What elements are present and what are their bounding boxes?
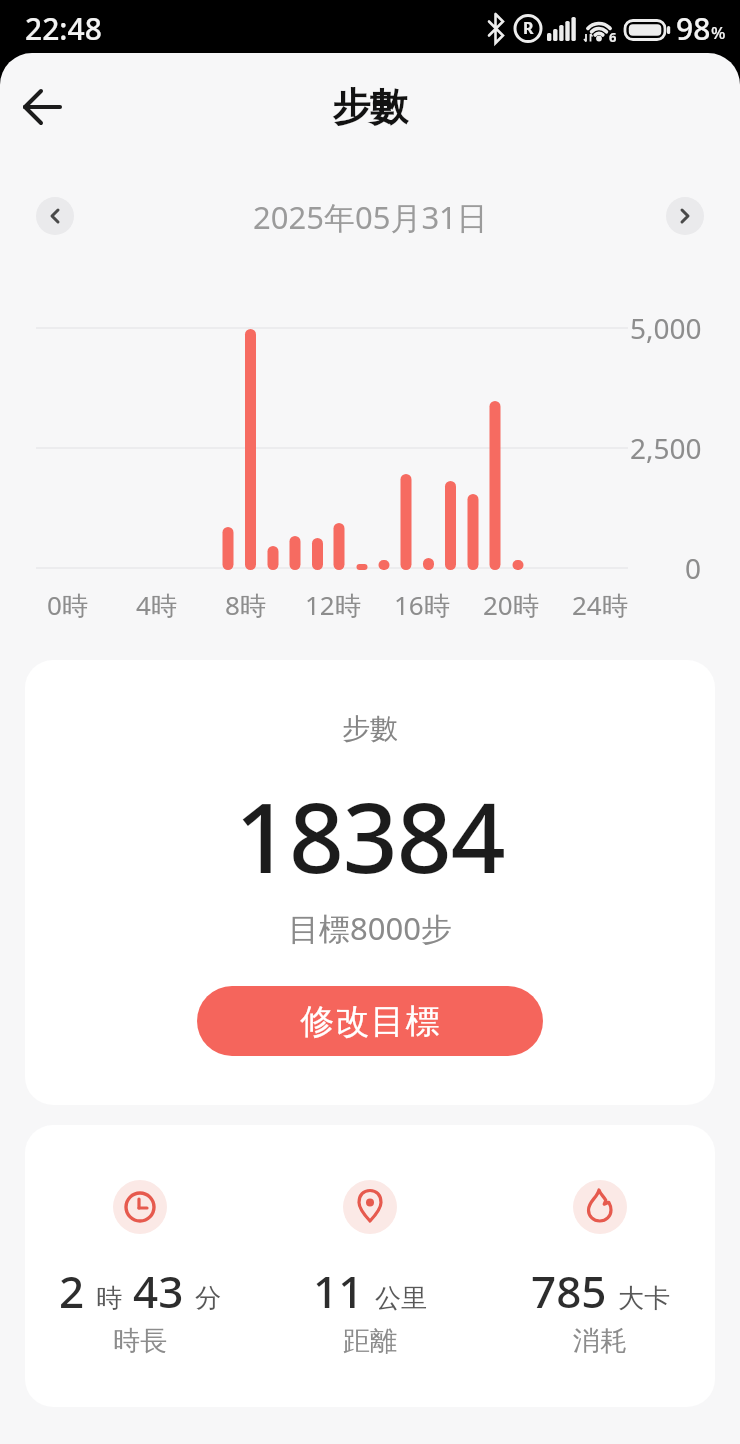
staticText: 2,500	[630, 429, 702, 467]
staticText: 目標8000步	[288, 907, 452, 949]
staticText: 分	[195, 1282, 221, 1315]
staticText: 步數	[342, 711, 398, 746]
staticText: 18384	[235, 770, 505, 901]
staticText: 2025年05月31日	[253, 196, 488, 236]
staticText: 11	[313, 1261, 364, 1321]
staticText: 6	[609, 28, 617, 46]
staticText: 98	[676, 8, 711, 49]
staticText: 大卡	[618, 1282, 670, 1315]
button[interactable]	[36, 197, 74, 235]
staticText: 0時	[47, 587, 88, 623]
staticText: 步數	[332, 83, 408, 131]
button[interactable]: 2	[25, 1125, 255, 1407]
staticText: R	[523, 17, 534, 39]
staticText: 0	[685, 549, 702, 587]
button[interactable]: 修改目標	[197, 986, 543, 1056]
staticText: 785	[531, 1261, 607, 1321]
button[interactable]	[666, 197, 704, 235]
staticText: 距離	[343, 1324, 397, 1358]
staticText: %	[711, 21, 726, 44]
staticText: 公里	[375, 1282, 427, 1315]
staticText: 43	[133, 1261, 184, 1321]
staticText: 20時	[483, 587, 539, 623]
button[interactable]: 785	[485, 1125, 715, 1407]
staticText: 16時	[394, 587, 450, 623]
button[interactable]	[10, 75, 74, 139]
staticText: 12時	[305, 587, 361, 623]
staticText: 4時	[136, 587, 177, 623]
staticText: 時長	[113, 1324, 167, 1358]
staticText: 修改目標	[300, 1000, 440, 1043]
staticText: 消耗	[573, 1324, 627, 1358]
staticText: 8時	[225, 587, 266, 623]
staticText: 24時	[572, 587, 628, 623]
staticText: 時	[96, 1282, 122, 1315]
staticText: 22:48	[25, 8, 102, 49]
staticText: 5,000	[630, 309, 702, 347]
staticText: 2	[59, 1261, 85, 1321]
button[interactable]: 11	[255, 1125, 485, 1407]
